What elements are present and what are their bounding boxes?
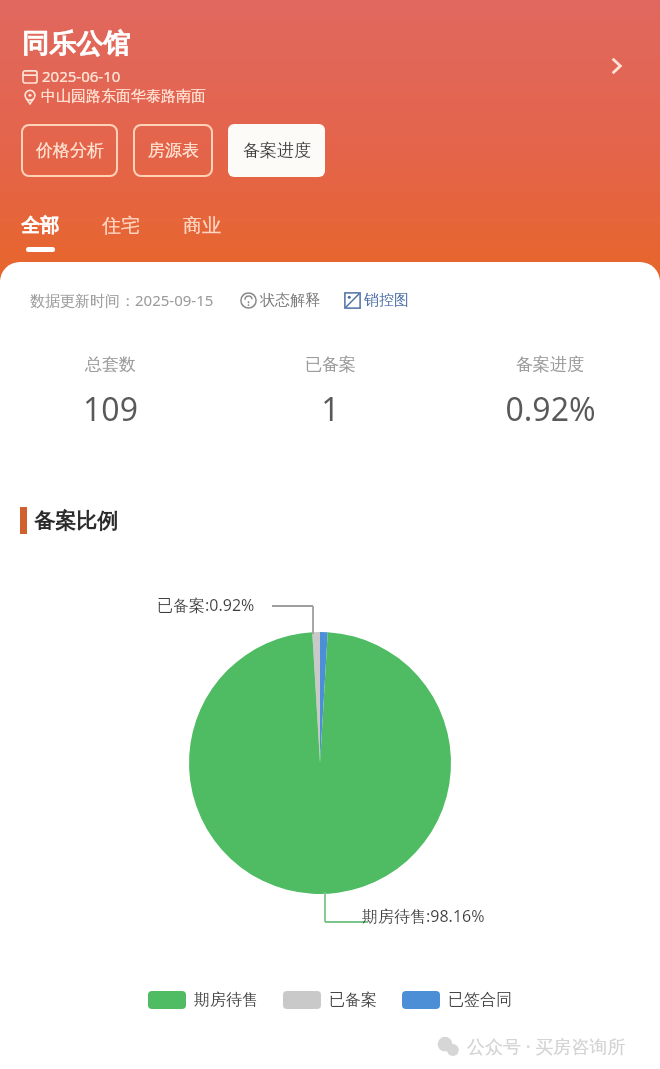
staticText: 已备案: [305, 354, 356, 375]
staticText: 同乐公馆: [22, 27, 130, 61]
staticText: 109: [83, 387, 138, 431]
staticText: 已签合同: [448, 990, 512, 1010]
staticText: 已备案:0.92%: [157, 594, 255, 616]
staticText: 期房待售:98.16%: [362, 905, 485, 927]
staticText: 住宅: [102, 214, 140, 238]
staticText: 期房待售: [194, 990, 258, 1010]
staticText: 2025-06-10: [42, 66, 121, 86]
button[interactable]: 已备案: [220, 354, 440, 431]
button[interactable]: 备案进度: [228, 124, 325, 177]
staticText: 备案进度: [243, 140, 311, 161]
button[interactable]: 状态解释: [240, 291, 320, 310]
button[interactable]: 房源表: [133, 124, 213, 177]
staticText: 销控图: [364, 291, 409, 310]
staticText: 商业: [183, 214, 221, 238]
staticText: 中山园路东面华泰路南面: [41, 87, 206, 106]
staticText: 公众号 · 买房咨询所: [467, 1034, 626, 1059]
button[interactable]: 住宅: [97, 212, 145, 254]
button[interactable]: 期房待售: [148, 990, 258, 1010]
button[interactable]: Open project detail: [598, 48, 634, 84]
button[interactable]: 全部: [16, 212, 64, 254]
staticText: 总套数: [85, 354, 136, 375]
staticText: 0.92%: [505, 387, 596, 431]
staticText: 备案比例: [34, 508, 118, 534]
button[interactable]: 总套数: [0, 354, 220, 431]
button[interactable]: 备案进度: [440, 354, 660, 431]
button[interactable]: 销控图: [344, 291, 409, 310]
staticText: 全部: [21, 214, 59, 238]
staticText: 房源表: [148, 140, 199, 161]
staticText: 状态解释: [260, 291, 320, 310]
button[interactable]: 商业: [178, 212, 226, 254]
button[interactable]: 已签合同: [402, 990, 512, 1010]
staticText: 数据更新时间：2025-09-15: [30, 290, 214, 310]
staticText: 已备案: [329, 990, 377, 1010]
button[interactable]: 已备案: [283, 990, 377, 1010]
button[interactable]: 价格分析: [21, 124, 118, 177]
staticText: 1: [321, 387, 340, 431]
staticText: 备案进度: [516, 354, 584, 375]
staticText: 价格分析: [36, 140, 104, 161]
